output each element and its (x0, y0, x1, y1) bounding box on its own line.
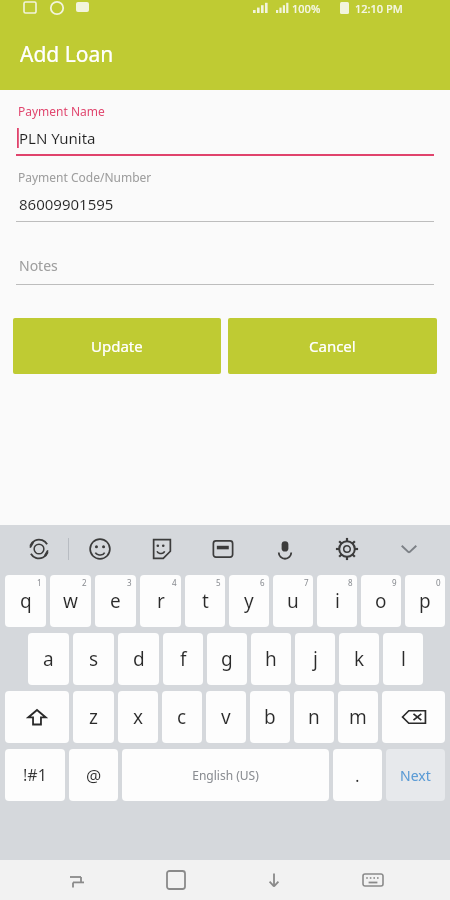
staticText: @ (86, 764, 102, 787)
staticText: f (180, 646, 187, 672)
staticText: j (313, 646, 318, 672)
button[interactable]: w (50, 575, 91, 627)
button[interactable]: c (162, 691, 202, 743)
staticText: i (335, 588, 340, 614)
button[interactable]: d (118, 633, 159, 685)
button[interactable]: g (207, 633, 247, 685)
staticText: 1 (37, 577, 42, 588)
staticText: 100% (292, 1, 321, 16)
button[interactable]: z (73, 691, 114, 743)
button[interactable]: Translate (10, 525, 68, 572)
button[interactable]: i (317, 575, 357, 627)
staticText: y (244, 588, 254, 614)
staticText: Add Loan (20, 40, 114, 69)
staticText: d (133, 646, 145, 672)
button[interactable]: m (338, 691, 378, 743)
staticText: b (264, 704, 276, 730)
staticText: Next (400, 766, 431, 785)
staticText: l (401, 646, 406, 672)
staticText: w (63, 588, 78, 614)
staticText: 4 (172, 577, 177, 588)
button[interactable]: Keyboard settings (316, 525, 378, 572)
button[interactable]: Recents (55, 860, 99, 900)
button[interactable]: Backspace (382, 691, 445, 743)
button[interactable]: y (229, 575, 269, 627)
staticText: x (133, 704, 144, 730)
button[interactable]: v (206, 691, 246, 743)
staticText: 6 (260, 577, 265, 588)
staticText: Cancel (309, 336, 356, 356)
staticText: 2 (82, 577, 87, 588)
button[interactable]: e (95, 575, 136, 627)
button[interactable]: Voice input (254, 525, 316, 572)
staticText: n (308, 704, 320, 730)
button[interactable]: GIF (192, 525, 254, 572)
staticText: h (265, 646, 277, 672)
button[interactable]: Cancel (228, 318, 437, 374)
button[interactable]: a (28, 633, 69, 685)
button[interactable]: English (US) (122, 749, 329, 801)
staticText: 7 (304, 577, 309, 588)
button[interactable]: Next (386, 749, 445, 801)
button[interactable]: 86009901595 (0, 193, 450, 217)
button[interactable]: Stickers (130, 525, 192, 572)
staticText: Payment Code/Number (18, 169, 152, 185)
button[interactable]: r (140, 575, 181, 627)
staticText: c (177, 704, 187, 730)
button[interactable]: Switch keyboard (351, 860, 395, 900)
staticText: e (110, 588, 121, 614)
button[interactable]: !#1 (5, 749, 65, 801)
staticText: 5 (216, 577, 221, 588)
button[interactable]: q (5, 575, 46, 627)
button[interactable]: Emoji (69, 525, 130, 572)
staticText: Update (91, 336, 143, 356)
button[interactable]: Notes (0, 256, 450, 278)
button[interactable]: t (185, 575, 225, 627)
staticText: English (US) (192, 767, 259, 783)
button[interactable]: k (339, 633, 379, 685)
button[interactable]: n (294, 691, 334, 743)
staticText: s (89, 646, 99, 672)
staticText: a (43, 646, 54, 672)
button[interactable]: Home (154, 860, 198, 900)
button[interactable]: Hide keyboard (252, 860, 296, 900)
button[interactable]: b (250, 691, 290, 743)
staticText: 3 (127, 577, 132, 588)
button[interactable]: f (163, 633, 203, 685)
button[interactable]: PLN Yunita (0, 127, 450, 151)
staticText: . (355, 764, 360, 787)
button[interactable]: p (405, 575, 445, 627)
button[interactable]: s (73, 633, 114, 685)
button[interactable]: j (295, 633, 335, 685)
staticText: 86009901595 (19, 194, 114, 214)
staticText: q (20, 588, 32, 614)
button[interactable]: @ (69, 749, 118, 801)
staticText: p (419, 588, 431, 614)
staticText: t (202, 588, 209, 614)
staticText: v (221, 704, 231, 730)
staticText: m (349, 704, 367, 730)
staticText: Notes (19, 256, 58, 275)
staticText: 8 (348, 577, 353, 588)
staticText: PLN Yunita (19, 128, 96, 148)
button[interactable]: x (118, 691, 158, 743)
staticText: !#1 (23, 764, 47, 786)
button[interactable]: l (383, 633, 423, 685)
button[interactable]: o (361, 575, 401, 627)
staticText: o (375, 588, 387, 614)
staticText: z (89, 704, 98, 730)
staticText: 12:10 PM (355, 1, 403, 16)
staticText: Payment Name (18, 103, 105, 119)
staticText: 0 (436, 577, 441, 588)
button[interactable]: u (273, 575, 313, 627)
button[interactable]: Shift (5, 691, 69, 743)
button[interactable]: h (251, 633, 291, 685)
button[interactable]: Collapse (378, 525, 440, 572)
button[interactable]: Update (13, 318, 221, 374)
button[interactable]: . (333, 749, 382, 801)
staticText: r (157, 588, 165, 614)
staticText: g (221, 646, 233, 672)
staticText: u (287, 588, 299, 614)
staticText: 9 (392, 577, 397, 588)
staticText: k (354, 646, 365, 672)
